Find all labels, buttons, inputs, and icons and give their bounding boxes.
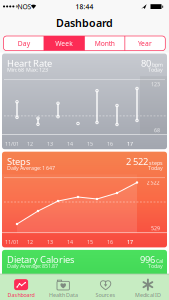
button[interactable]: Year xyxy=(125,36,165,51)
staticText: Sources xyxy=(96,291,116,298)
staticText: 80 xyxy=(141,57,151,69)
staticText: 15 xyxy=(87,140,93,147)
staticText: 529 xyxy=(151,225,160,232)
staticText: 12 xyxy=(27,140,33,147)
button[interactable]: Dietary Calories xyxy=(2,250,167,300)
staticText: 13 xyxy=(47,238,53,245)
staticText: Medical ID xyxy=(135,291,161,298)
staticText: Today xyxy=(148,66,163,73)
button[interactable]: Dashboard xyxy=(0,277,42,300)
staticText: Day xyxy=(18,39,30,48)
button[interactable]: Month xyxy=(84,36,125,51)
staticText: 13 xyxy=(47,140,53,147)
staticText: Daily Average: 851.87 xyxy=(7,262,58,270)
staticText: 996 xyxy=(140,253,155,266)
staticText: 123 xyxy=(151,81,160,88)
staticText: 14 xyxy=(67,140,73,147)
button[interactable]: Week xyxy=(44,36,84,51)
staticText: 2 522 xyxy=(146,179,159,186)
staticText: 11/01 xyxy=(5,238,19,245)
staticText: Today xyxy=(148,164,163,171)
staticText: 15 xyxy=(87,238,93,245)
button[interactable]: Heart Rate xyxy=(2,53,167,149)
staticText: Week xyxy=(55,39,73,48)
staticText: steps xyxy=(149,159,163,166)
staticText: Dashboard xyxy=(8,291,35,298)
button[interactable]: Health Data xyxy=(42,277,84,300)
staticText: Today xyxy=(148,262,163,270)
staticText: Month xyxy=(95,39,115,48)
staticText: bpm xyxy=(152,61,163,68)
staticText: 16 xyxy=(107,238,113,245)
staticText: Dashboard xyxy=(56,16,113,30)
staticText: Min: 68 Max: 123 xyxy=(7,66,48,73)
staticText: 14 xyxy=(67,238,73,245)
button[interactable]: Medical ID xyxy=(127,277,169,300)
button[interactable]: Steps xyxy=(2,152,167,247)
staticText: Heart Rate xyxy=(7,57,52,69)
staticText: Dietary Calories xyxy=(7,253,74,266)
staticText: 17 xyxy=(127,238,133,245)
staticText: Cal xyxy=(156,257,163,265)
button[interactable]: Sources xyxy=(85,277,127,300)
staticText: Steps xyxy=(7,155,30,167)
staticText: 17 xyxy=(127,140,133,147)
staticText: 12 xyxy=(27,238,33,245)
staticText: 18:44 xyxy=(75,2,93,11)
staticText: NOS xyxy=(17,2,31,11)
staticText: 2 522 xyxy=(126,155,148,167)
staticText: Year xyxy=(138,39,152,48)
staticText: 11/01 xyxy=(5,140,19,147)
staticText: Health Data xyxy=(49,291,78,298)
button[interactable]: Day xyxy=(3,36,44,51)
staticText: Daily Average: 1 647 xyxy=(7,164,55,171)
staticText: 68 xyxy=(154,127,160,134)
staticText: 16 xyxy=(107,140,113,147)
